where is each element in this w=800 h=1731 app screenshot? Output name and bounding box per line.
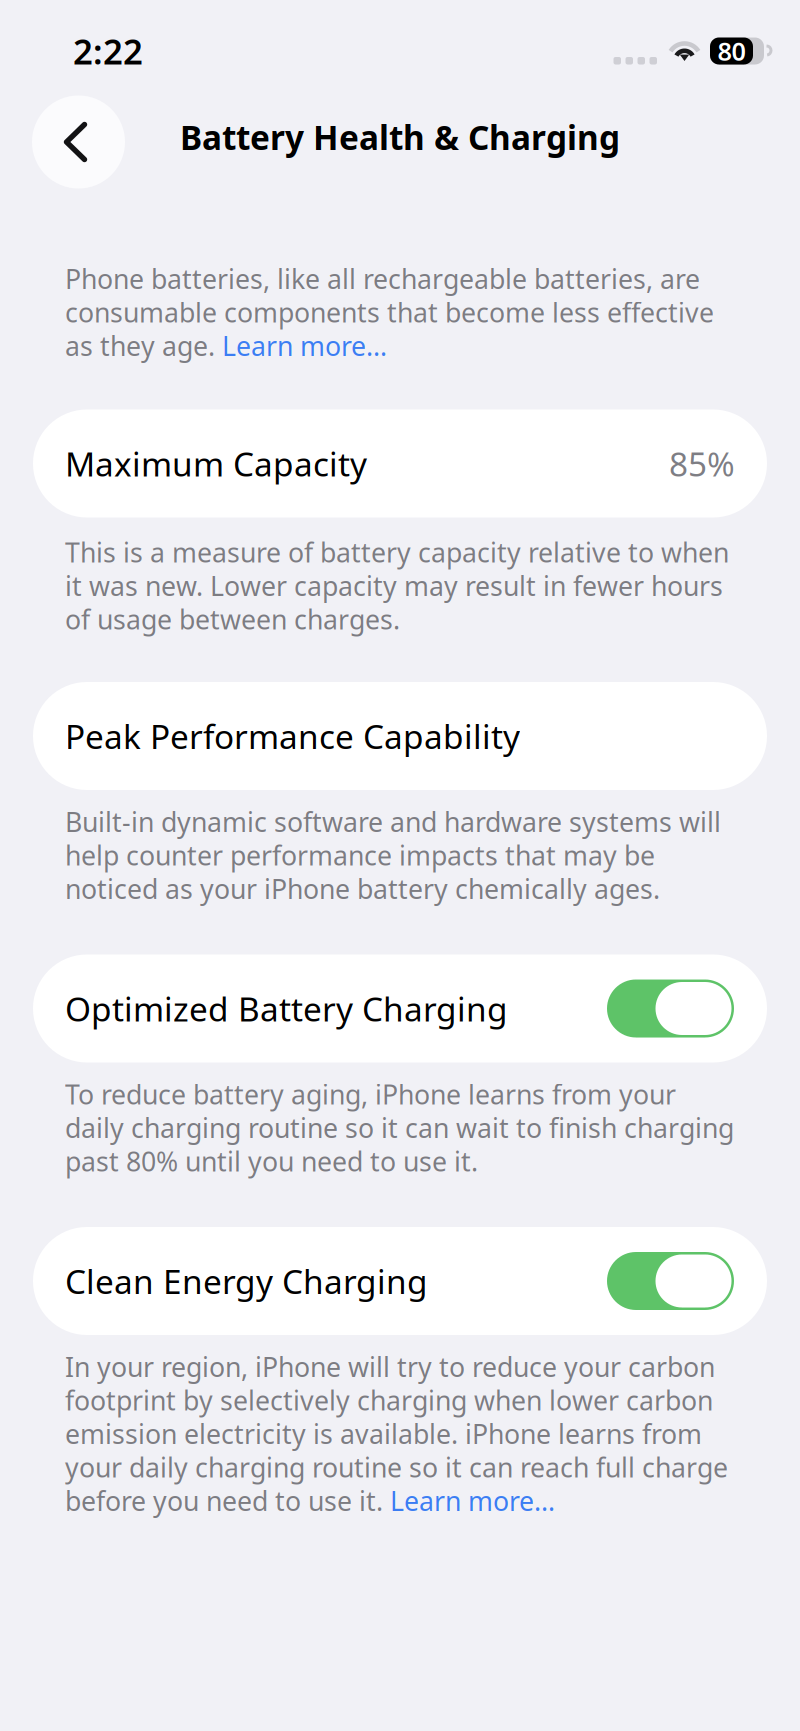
button[interactable]: Clean Energy Charging — [33, 1227, 767, 1335]
staticText: Peak Performance Capability — [65, 714, 520, 758]
staticText: footprint by selectively charging when l… — [65, 1382, 713, 1418]
staticText: it was new. Lower capacity may result in… — [65, 568, 723, 603]
staticText: noticed as your iPhone battery chemicall… — [65, 871, 660, 906]
button[interactable]: Back — [32, 95, 125, 188]
staticText: as they age. — [65, 328, 222, 363]
staticText: 85% — [669, 441, 735, 486]
staticText: Learn more… — [222, 328, 387, 363]
button[interactable]: Optimized Battery Charging — [33, 954, 767, 1062]
staticText: Learn more… — [390, 1483, 555, 1518]
staticText: emission electricity is available. iPhon… — [65, 1416, 702, 1451]
staticText: 80 — [717, 34, 745, 68]
button[interactable]: Maximum Capacity — [33, 409, 767, 517]
staticText: In your region, iPhone will try to reduc… — [65, 1349, 715, 1384]
staticText: your daily charging routine so it can re… — [65, 1449, 728, 1485]
staticText: To reduce battery aging, iPhone learns f… — [65, 1076, 676, 1112]
staticText: consumable components that become less e… — [65, 294, 714, 330]
button[interactable]: Peak Performance Capability — [33, 682, 767, 790]
staticText: Battery Health & Charging — [180, 115, 620, 159]
staticText: Optimized Battery Charging — [65, 986, 508, 1031]
staticText: Phone batteries, like all rechargeable b… — [65, 261, 700, 296]
staticText: Built-in dynamic software and hardware s… — [65, 804, 721, 839]
staticText: This is a measure of battery capacity re… — [65, 534, 729, 570]
staticText: Maximum Capacity — [65, 441, 367, 486]
staticText: before you need to use it. — [65, 1483, 390, 1518]
staticText: of usage between charges. — [65, 601, 400, 637]
staticText: Clean Energy Charging — [65, 1259, 428, 1303]
staticText: daily charging routine so it can wait to… — [65, 1110, 734, 1145]
staticText: 2:22 — [73, 28, 143, 74]
staticText: help counter performance impacts that ma… — [65, 837, 655, 873]
staticText: past 80% until you need to use it. — [65, 1143, 478, 1179]
